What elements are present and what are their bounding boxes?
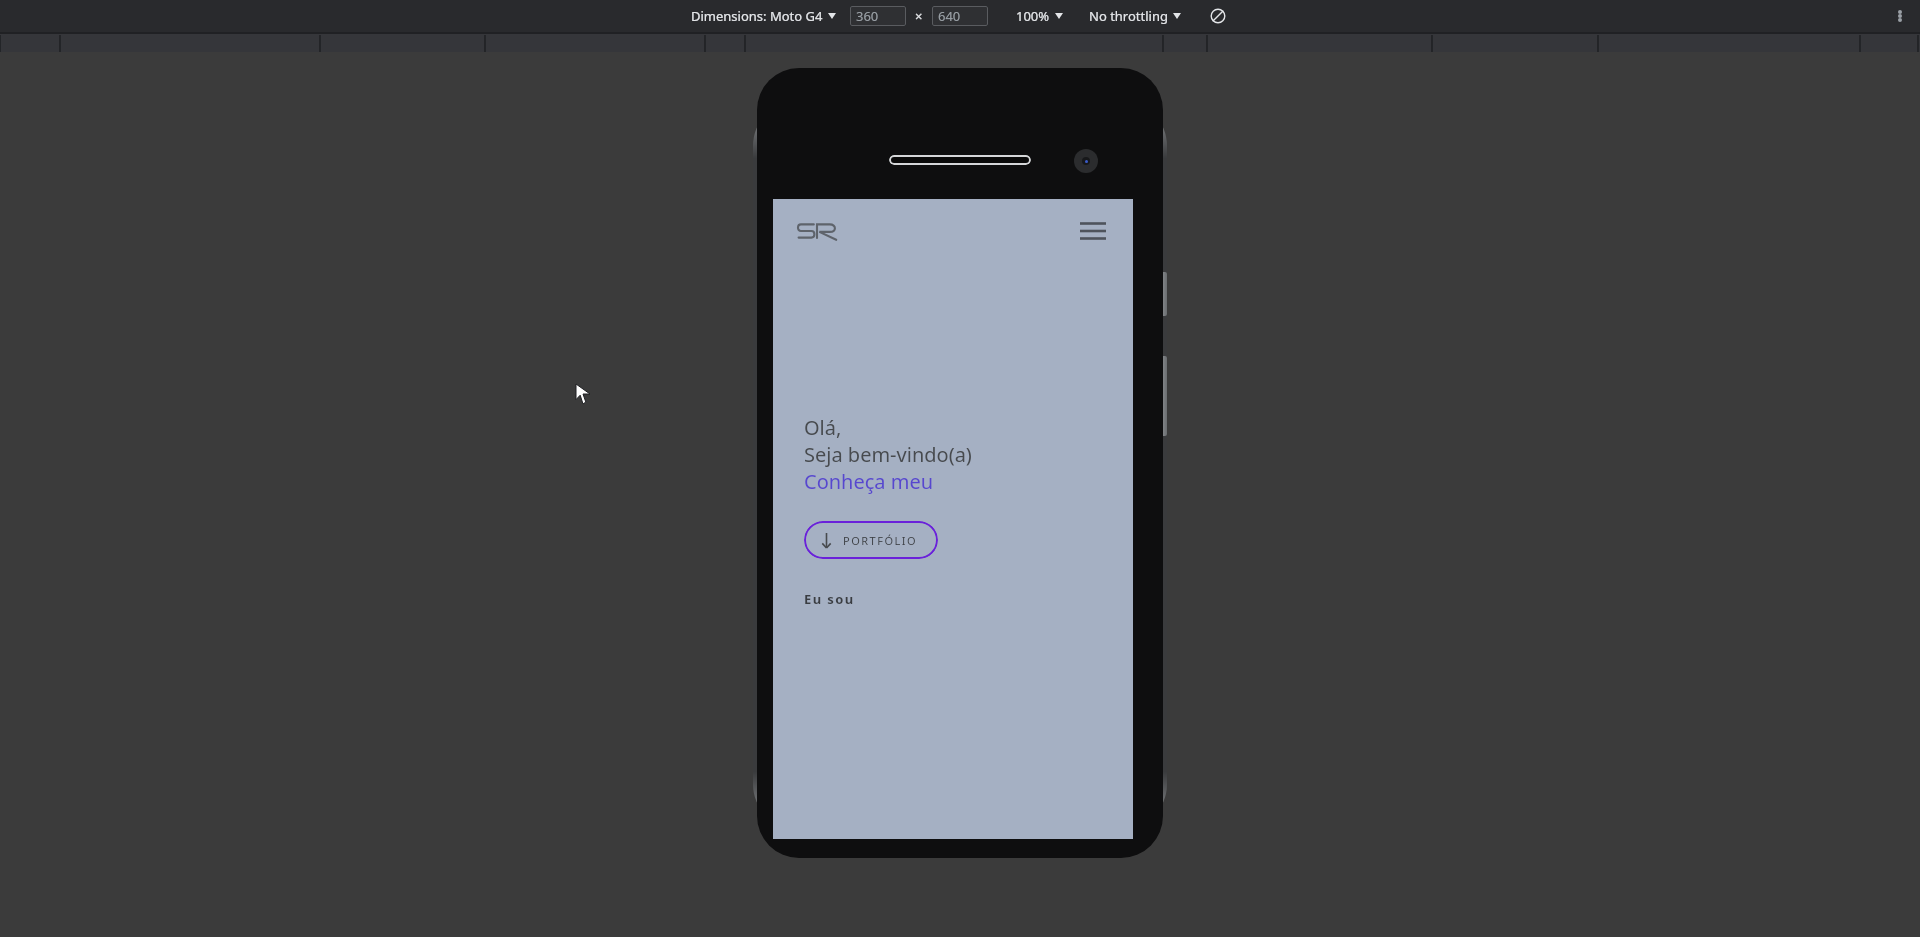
button[interactable]: Volume xyxy=(1158,356,1167,436)
staticText: × xyxy=(915,7,923,25)
button[interactable]: 640 xyxy=(932,6,988,26)
button[interactable]: PORTFÓLIO xyxy=(804,521,938,559)
button[interactable]: No throttling xyxy=(1087,4,1183,28)
staticText: Dimensions: Moto G4 xyxy=(691,7,823,25)
staticText: No throttling xyxy=(1089,7,1168,25)
staticText: Seja bem-vindo(a) xyxy=(804,441,972,468)
staticText: 100% xyxy=(1016,7,1050,25)
staticText: 640 xyxy=(938,7,961,25)
staticText: Conheça meu xyxy=(804,468,934,495)
staticText: 360 xyxy=(856,7,879,25)
button[interactable]: Power xyxy=(1158,272,1167,316)
button[interactable]: More options xyxy=(1888,4,1912,28)
button[interactable]: 360 xyxy=(850,6,906,26)
button[interactable]: Home — SR logo xyxy=(795,216,839,246)
button[interactable]: Rotate xyxy=(1207,5,1229,27)
staticText: PORTFÓLIO xyxy=(843,533,918,548)
staticText: Olá, xyxy=(804,414,842,441)
staticText: Eu sou xyxy=(804,590,855,608)
button[interactable]: 100% xyxy=(1014,4,1065,28)
button[interactable]: Open menu xyxy=(1075,213,1111,249)
